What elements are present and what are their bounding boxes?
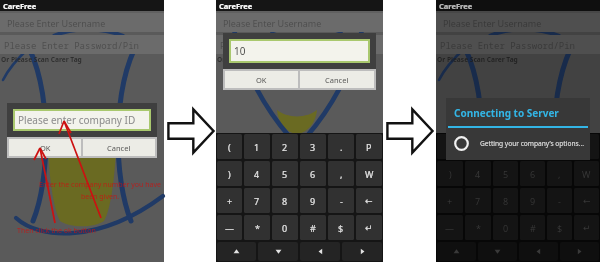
button[interactable]: 4 xyxy=(244,161,270,186)
button[interactable]: 10 xyxy=(229,39,370,63)
button[interactable]: 8 xyxy=(272,188,298,213)
staticText: Please Enter Username xyxy=(7,17,106,29)
button[interactable]: Please Enter Username xyxy=(436,13,600,32)
staticText: Please Enter Password/Pin xyxy=(220,39,356,51)
button[interactable]: W xyxy=(356,161,382,186)
staticText: 5 xyxy=(282,168,288,180)
button[interactable]: # xyxy=(300,215,326,240)
button[interactable]: 2 xyxy=(272,134,298,159)
button[interactable]: Right xyxy=(560,242,599,261)
button[interactable]: 7 xyxy=(244,188,270,213)
button[interactable]: OK xyxy=(9,139,81,156)
staticText: $ xyxy=(557,222,563,234)
button[interactable]: Please Enter Username xyxy=(0,13,164,32)
button[interactable]: P xyxy=(574,134,599,159)
staticText: 6 xyxy=(310,168,316,180)
button[interactable]: # xyxy=(520,215,545,240)
button[interactable]: 8 xyxy=(493,188,518,213)
staticText: 3 xyxy=(530,141,536,153)
button[interactable]: 5 xyxy=(493,161,518,186)
button[interactable]: * xyxy=(244,215,270,240)
button[interactable]: Left xyxy=(519,242,558,261)
staticText: OK xyxy=(256,75,267,85)
staticText: * xyxy=(476,222,481,234)
button[interactable]: Up xyxy=(217,242,256,261)
staticText: W xyxy=(582,168,591,180)
staticText: Connecting to Server xyxy=(454,106,559,120)
button[interactable]: , xyxy=(328,161,354,186)
button[interactable]: Up xyxy=(437,242,476,261)
button[interactable]: Cancel xyxy=(83,139,155,156)
staticText: 7 xyxy=(475,195,481,207)
button[interactable]: Please Enter Password/Pin xyxy=(0,35,164,54)
button[interactable]: Down xyxy=(258,242,298,261)
button[interactable]: Down xyxy=(478,242,517,261)
button[interactable]: ( xyxy=(217,134,242,159)
button[interactable]: ↵ xyxy=(574,215,599,240)
button[interactable]: W xyxy=(574,161,599,186)
button[interactable]: 0 xyxy=(493,215,518,240)
staticText: , xyxy=(340,168,343,180)
staticText: Getting your company’s options... xyxy=(480,139,584,148)
staticText: . xyxy=(558,141,561,153)
staticText: — xyxy=(225,222,235,234)
button[interactable]: 6 xyxy=(300,161,326,186)
button[interactable]: Left xyxy=(300,242,340,261)
button[interactable]: 4 xyxy=(465,161,491,186)
button[interactable]: + xyxy=(217,188,242,213)
button[interactable]: 0 xyxy=(272,215,298,240)
staticText: ← xyxy=(365,196,373,206)
staticText: Or Please Scan Carer Tag xyxy=(437,55,518,64)
staticText: - xyxy=(558,195,561,207)
button[interactable]: Please enter company ID xyxy=(13,109,151,131)
staticText: 3 xyxy=(310,141,316,153)
button[interactable]: Please Enter Password/Pin xyxy=(436,35,600,54)
staticText: # xyxy=(310,222,316,234)
staticText: Please Enter Username xyxy=(443,17,542,29)
button[interactable]: 2 xyxy=(493,134,518,159)
button[interactable]: 6 xyxy=(520,161,545,186)
staticText: CareFree xyxy=(219,1,253,11)
button[interactable]: Cancel xyxy=(300,71,374,88)
staticText: - xyxy=(340,195,343,207)
button[interactable]: . xyxy=(547,134,572,159)
staticText: ) xyxy=(449,168,452,180)
button[interactable]: ( xyxy=(437,134,463,159)
staticText: Please Enter Username xyxy=(223,17,322,29)
button[interactable]: ← xyxy=(574,188,599,213)
staticText: 0 xyxy=(282,222,288,234)
button[interactable]: ← xyxy=(356,188,382,213)
button[interactable]: ) xyxy=(217,161,242,186)
button[interactable]: 1 xyxy=(244,134,270,159)
button[interactable]: — xyxy=(217,215,242,240)
button[interactable]: $ xyxy=(328,215,354,240)
button[interactable]: 5 xyxy=(272,161,298,186)
button[interactable]: 9 xyxy=(520,188,545,213)
staticText: ↵ xyxy=(365,223,373,233)
button[interactable]: Please Enter Username xyxy=(216,13,383,32)
staticText: ← xyxy=(583,196,591,206)
button[interactable]: 9 xyxy=(300,188,326,213)
staticText: 1 xyxy=(254,141,260,153)
button[interactable]: 1 xyxy=(465,134,491,159)
button[interactable]: $ xyxy=(547,215,572,240)
button[interactable]: 3 xyxy=(300,134,326,159)
button[interactable]: P xyxy=(356,134,382,159)
button[interactable]: - xyxy=(328,188,354,213)
button[interactable]: Please Enter Password/Pin xyxy=(216,35,383,54)
button[interactable]: Right xyxy=(342,242,382,261)
button[interactable]: ↵ xyxy=(356,215,382,240)
staticText: 8 xyxy=(503,195,509,207)
button[interactable]: OK xyxy=(225,71,298,88)
staticText: 1 xyxy=(475,141,481,153)
button[interactable]: . xyxy=(328,134,354,159)
button[interactable]: 3 xyxy=(520,134,545,159)
staticText: Please Enter Password/Pin xyxy=(440,39,576,51)
